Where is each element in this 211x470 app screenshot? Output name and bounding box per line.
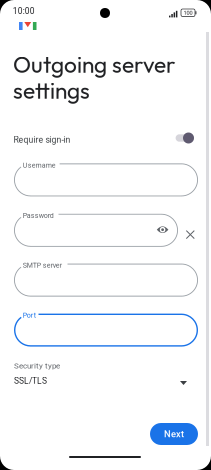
button[interactable]: Security type [0, 0, 184, 34]
button[interactable]: Next [0, 0, 48, 22]
staticText: Password [23, 211, 54, 220]
staticText: SSL/TLS [14, 376, 47, 386]
staticText: settings [13, 76, 90, 105]
staticText: SMTP server [23, 261, 62, 270]
staticText: Outgoing server [13, 50, 175, 79]
staticText: Port [23, 311, 36, 320]
staticText: 100 [184, 9, 193, 16]
staticText: 10:00 [13, 6, 35, 16]
button[interactable]: Require sign-in [0, 0, 184, 20]
staticText: Next [164, 428, 184, 439]
staticText: Security type [14, 361, 60, 370]
button[interactable]: Show password [155, 222, 171, 238]
staticText: Require sign-in [13, 135, 70, 145]
staticText: Username [23, 161, 56, 169]
button[interactable]: Clear password [182, 227, 198, 243]
